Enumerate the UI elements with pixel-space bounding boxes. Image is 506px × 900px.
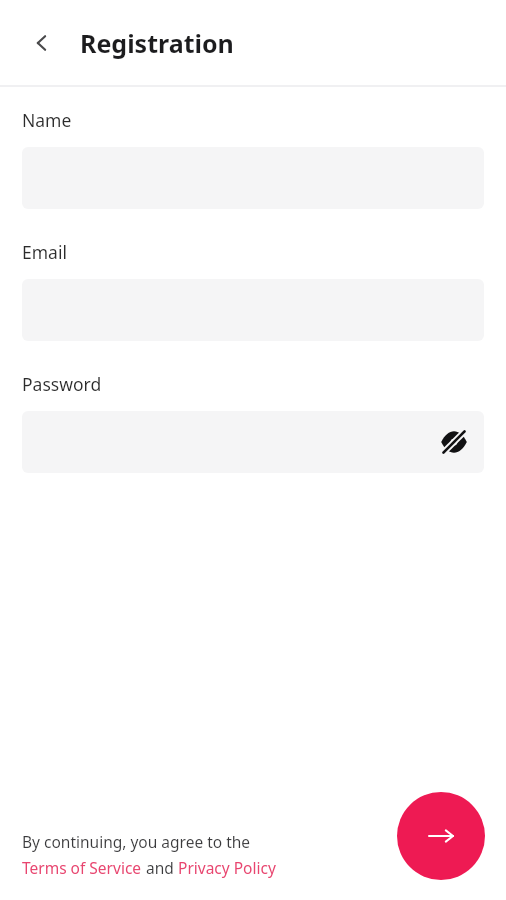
staticText: Password <box>22 372 102 396</box>
button[interactable]: Back <box>22 23 62 63</box>
button[interactable]: Continue <box>397 792 485 880</box>
staticText: Registration <box>80 26 234 60</box>
staticText: Terms of Service <box>22 857 142 878</box>
staticText: By continuing, you agree to the <box>22 831 251 852</box>
button[interactable]: Terms of Service <box>22 857 142 878</box>
staticText: Email <box>22 240 67 264</box>
staticText: and <box>142 857 178 878</box>
staticText: Name <box>22 108 72 132</box>
staticText: Privacy Policy <box>178 857 276 878</box>
button[interactable]: Privacy Policy <box>178 857 276 878</box>
button[interactable]: Show password <box>434 422 474 462</box>
button[interactable]: Show password <box>22 411 484 473</box>
